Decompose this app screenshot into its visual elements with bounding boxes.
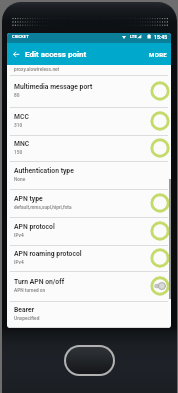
button[interactable]: MNC: [7, 136, 171, 162]
button[interactable]: Back: [8, 46, 24, 62]
staticText: None: [14, 177, 26, 183]
staticText: Unspecified: [14, 316, 40, 322]
staticText: 80: [14, 93, 20, 99]
staticText: MORE: [149, 51, 168, 58]
button[interactable]: APN protocol: [7, 218, 171, 246]
button[interactable]: Bearer: [7, 302, 171, 328]
staticText: CRICKET: [12, 34, 29, 39]
button[interactable]: APN roaming protocol: [7, 246, 171, 272]
button[interactable]: Authentication type: [7, 162, 171, 190]
staticText: LTE: [130, 34, 137, 39]
staticText: proxy.aiowireless.net: [14, 67, 60, 73]
staticText: Multimedia message port: [14, 83, 93, 91]
staticText: Authentication type: [14, 167, 74, 175]
staticText: MCC: [14, 113, 29, 121]
staticText: APN protocol: [14, 223, 55, 231]
staticText: 310: [14, 123, 23, 129]
staticText: MNC: [14, 140, 30, 148]
staticText: default,mms,supl,hipri,fota: [14, 205, 72, 211]
button[interactable]: Turn APN on/off: [7, 272, 171, 302]
staticText: Edit access point: [25, 50, 87, 59]
staticText: Bearer: [14, 306, 35, 314]
staticText: 150: [14, 150, 23, 156]
staticText: APN type: [14, 195, 43, 203]
staticText: 15:45: [154, 34, 168, 40]
staticText: APN roaming protocol: [14, 250, 82, 258]
button[interactable]: Home: [66, 347, 113, 374]
button[interactable]: APN type: [7, 190, 171, 218]
button[interactable]: MCC: [7, 108, 171, 136]
staticText: IPv4: [14, 260, 24, 266]
button[interactable]: proxy.aiowireless.net: [7, 65, 171, 76]
button[interactable]: Multimedia message port: [7, 76, 171, 108]
button[interactable]: MORE: [146, 48, 171, 61]
staticText: Turn APN on/off: [14, 278, 65, 286]
staticText: APN turned on: [14, 288, 46, 294]
staticText: IPv4: [14, 233, 24, 239]
